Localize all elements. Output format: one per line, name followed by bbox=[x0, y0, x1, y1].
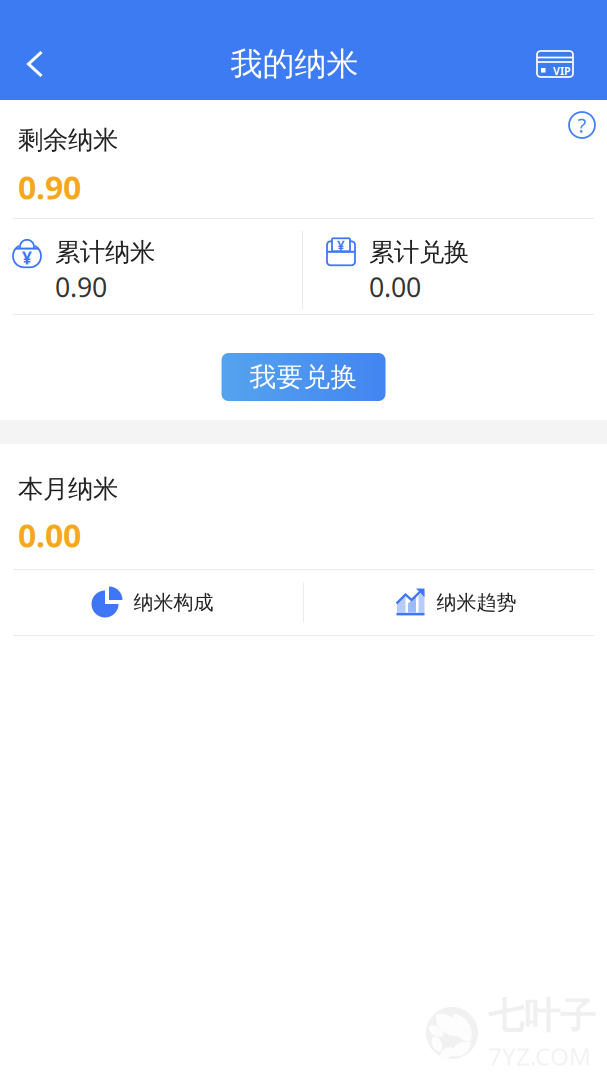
staticText: 纳米趋势 bbox=[436, 590, 516, 615]
button[interactable]: Help bbox=[568, 111, 596, 139]
staticText: 0.90 bbox=[18, 166, 81, 208]
staticText: 0.00 bbox=[369, 269, 421, 305]
staticText: 我的纳米 bbox=[230, 44, 358, 84]
staticText: ? bbox=[577, 112, 586, 138]
staticText: 剩余纳米 bbox=[18, 124, 118, 155]
staticText: 累计纳米 bbox=[55, 237, 155, 268]
staticText: 0.90 bbox=[55, 269, 107, 305]
staticText: 累计兑换 bbox=[369, 237, 469, 268]
staticText: 我要兑换 bbox=[249, 361, 357, 393]
button[interactable]: VIP card bbox=[519, 28, 607, 100]
staticText: 七叶子 bbox=[488, 994, 596, 1038]
staticText: VIP bbox=[553, 64, 571, 78]
staticText: 0.00 bbox=[18, 514, 81, 556]
button[interactable]: 我要兑换 bbox=[221, 353, 385, 401]
staticText: ¥ bbox=[337, 237, 345, 254]
button[interactable]: 纳米构成 bbox=[1, 570, 303, 635]
staticText: 本月纳米 bbox=[18, 473, 118, 504]
staticText: ¥ bbox=[22, 246, 32, 269]
button[interactable]: 纳米趋势 bbox=[304, 570, 606, 635]
staticText: 纳米构成 bbox=[133, 590, 213, 615]
button[interactable]: Back bbox=[0, 28, 70, 100]
staticText: 7YZ.COM bbox=[488, 1040, 591, 1072]
